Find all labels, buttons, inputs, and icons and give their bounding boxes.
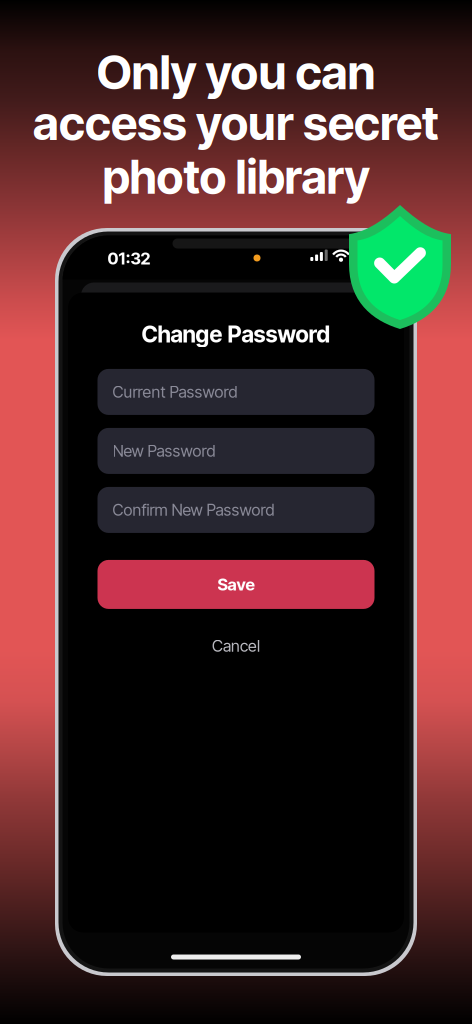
staticText: photo library [102, 149, 369, 205]
button[interactable]: Cancel [176, 631, 296, 661]
staticText: Cancel [212, 636, 260, 656]
staticText: Only you can [96, 43, 375, 101]
button[interactable]: Current Password [97, 369, 374, 415]
staticText: 01:32 [107, 248, 150, 269]
staticText: Confirm New Password [112, 500, 274, 520]
staticText: access your secret [33, 95, 439, 151]
staticText: Change Password [141, 320, 330, 348]
button[interactable]: Save [97, 560, 374, 609]
button[interactable]: Confirm New Password [97, 487, 374, 533]
staticText: Current Password [112, 382, 237, 402]
staticText: Save [217, 574, 254, 594]
button[interactable]: New Password [97, 428, 374, 474]
staticText: New Password [112, 441, 215, 461]
